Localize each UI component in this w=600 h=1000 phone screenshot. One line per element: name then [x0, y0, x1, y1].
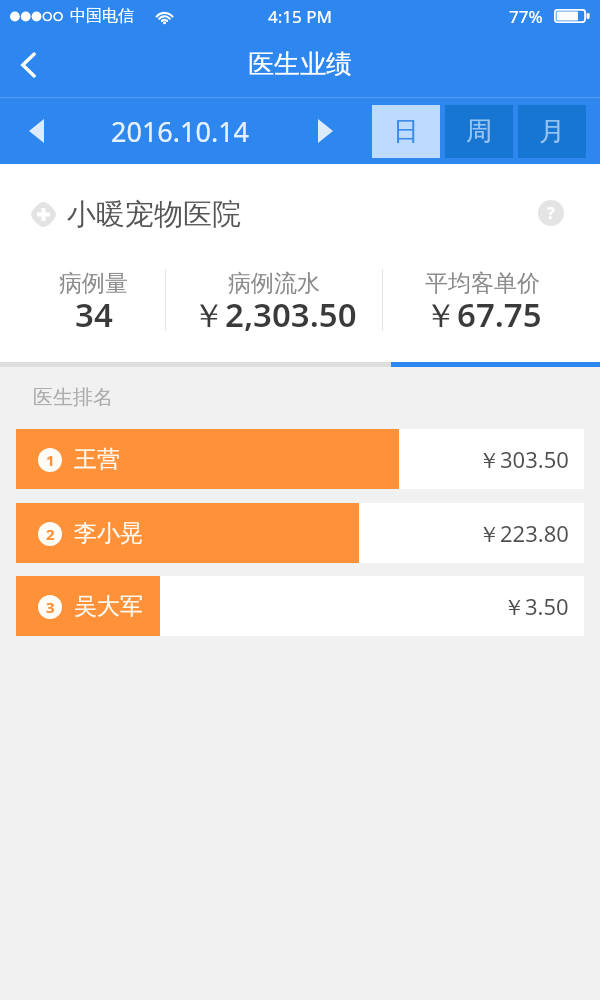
- staticText: 医生排名: [33, 385, 113, 410]
- staticText: 2: [46, 524, 55, 544]
- button[interactable]: Back: [0, 36, 58, 94]
- staticText: 1: [46, 450, 55, 470]
- button[interactable]: 周: [445, 105, 513, 158]
- button[interactable]: 平均客单价: [383, 269, 582, 343]
- button[interactable]: 2: [16, 503, 584, 563]
- staticText: 4:15 PM: [268, 5, 332, 28]
- staticText: ?: [547, 202, 555, 224]
- button[interactable]: Help: [533, 195, 569, 231]
- button[interactable]: 3: [16, 576, 584, 636]
- staticText: 77%: [509, 5, 543, 28]
- staticText: 34: [75, 292, 113, 337]
- staticText: 王营: [74, 445, 120, 474]
- staticText: 中国电信: [70, 6, 134, 26]
- button[interactable]: 日: [372, 105, 440, 158]
- staticText: 李小晃: [74, 519, 143, 548]
- button[interactable]: 病例量: [22, 269, 165, 343]
- button[interactable]: 月: [518, 105, 586, 158]
- staticText: 医生业绩: [248, 48, 352, 81]
- button[interactable]: Next day: [303, 109, 347, 153]
- staticText: 病例流水: [228, 269, 320, 298]
- staticText: 日: [393, 115, 419, 148]
- staticText: 周: [466, 115, 492, 148]
- staticText: ￥303.50: [478, 444, 569, 474]
- staticText: ￥67.75: [424, 292, 542, 337]
- staticText: 2016.10.14: [111, 113, 250, 150]
- staticText: ￥223.80: [478, 518, 569, 548]
- staticText: ￥3.50: [503, 591, 569, 621]
- button[interactable]: Previous day: [14, 109, 58, 153]
- staticText: ￥2,303.50: [192, 292, 357, 337]
- staticText: 3: [46, 597, 55, 617]
- staticText: 病例量: [59, 269, 128, 298]
- button[interactable]: 病例流水: [166, 269, 382, 343]
- staticText: 吴大军: [74, 592, 143, 621]
- staticText: 小暖宠物医院: [67, 196, 241, 233]
- staticText: 月: [539, 115, 565, 148]
- button[interactable]: 1: [16, 429, 584, 489]
- staticText: 平均客单价: [425, 269, 540, 298]
